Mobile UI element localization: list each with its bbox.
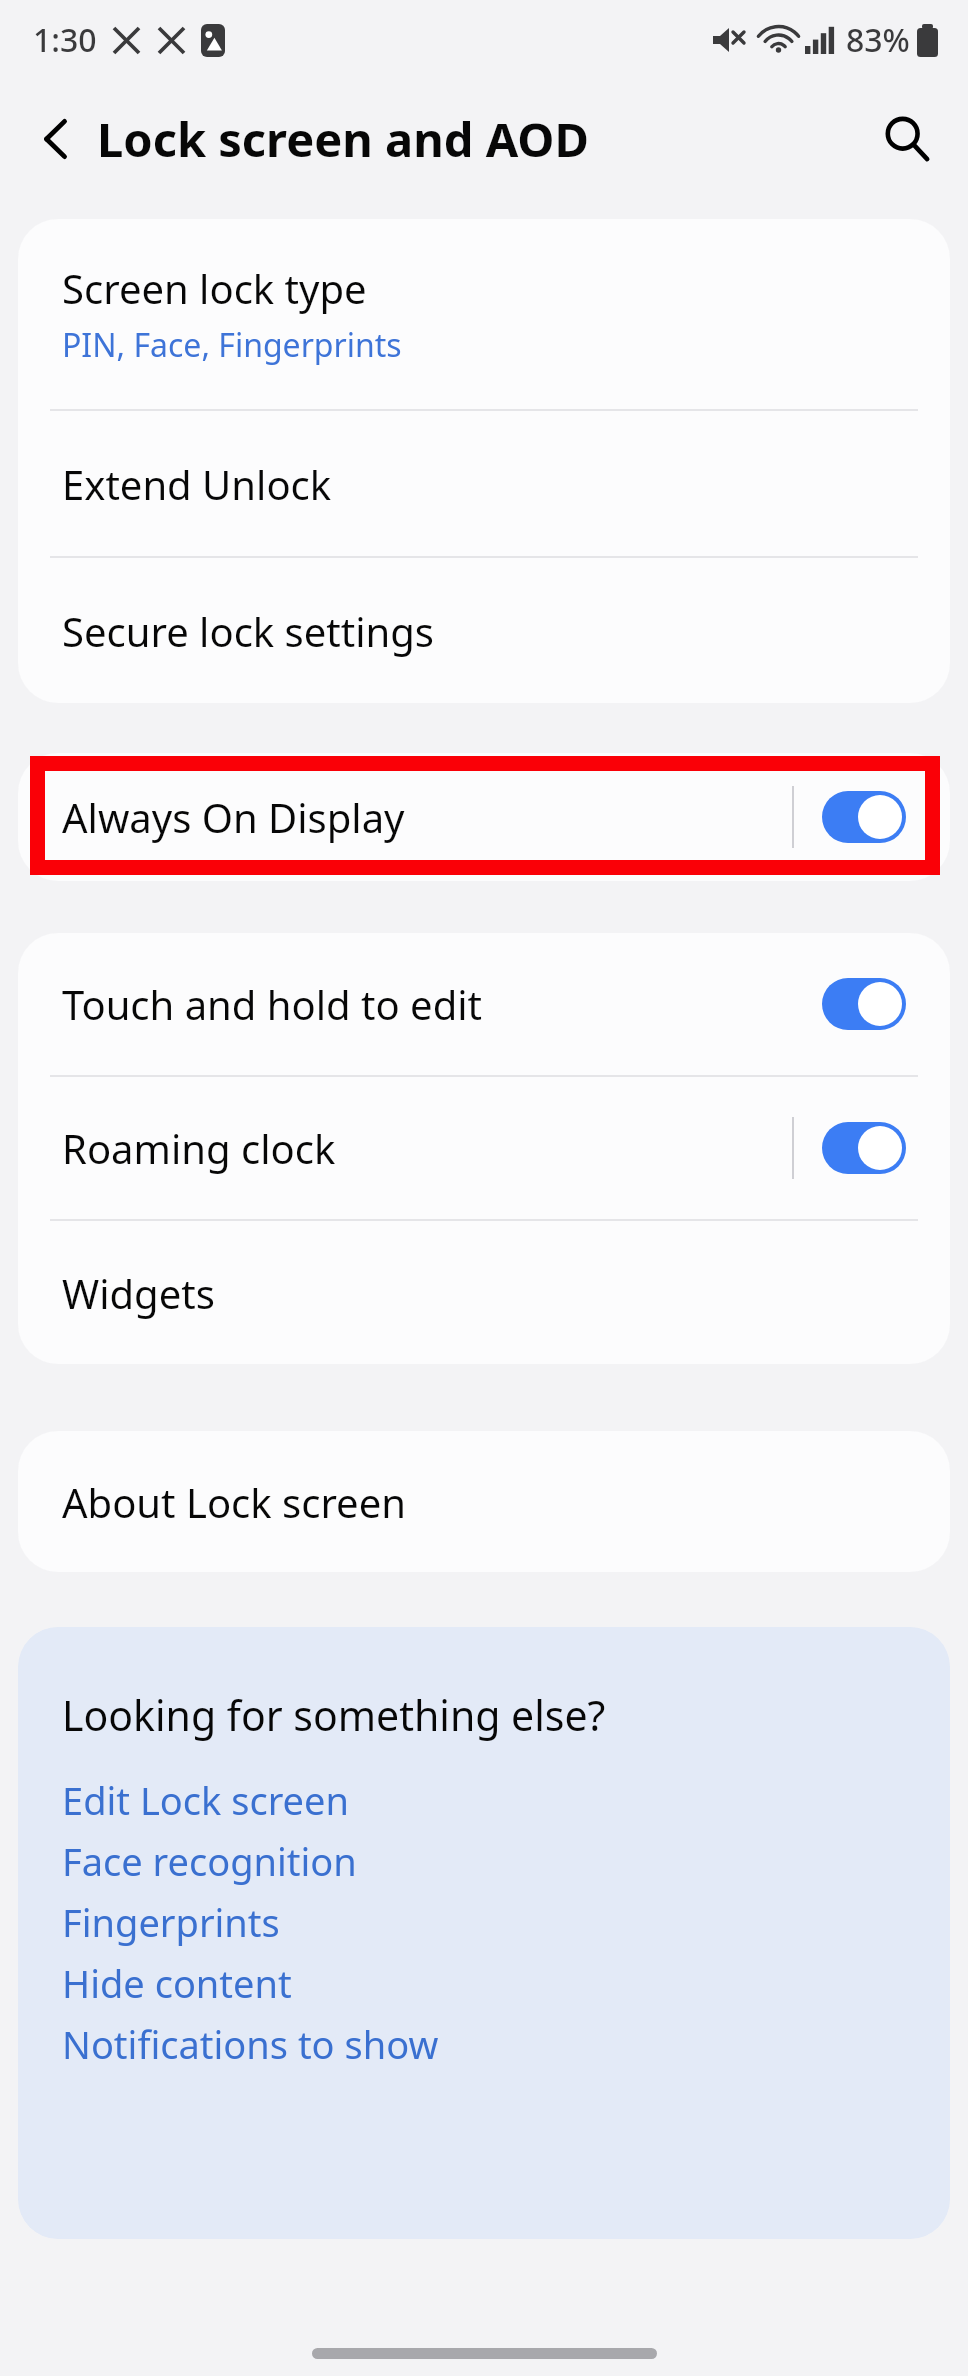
staticText: 1:30 <box>33 18 97 62</box>
staticText: Always On Display <box>62 790 792 844</box>
staticText: Roaming clock <box>62 1121 792 1175</box>
staticText: Widgets <box>62 1266 215 1320</box>
staticText: Lock screen and AOD <box>97 107 589 171</box>
staticText: Edit Lock screen <box>62 1774 349 1826</box>
staticText: Looking for something else? <box>62 1687 606 1743</box>
button[interactable]: Roaming clock toggle, on <box>822 1122 906 1174</box>
button[interactable]: Always On Display <box>18 753 950 881</box>
button[interactable]: Hide content <box>62 1952 950 2013</box>
button[interactable]: Extend Unlock <box>18 411 950 556</box>
staticText: Extend Unlock <box>62 457 332 511</box>
staticText: Screen lock type <box>62 261 367 315</box>
button[interactable]: About Lock screen <box>18 1431 950 1572</box>
button[interactable]: Face recognition <box>62 1830 950 1891</box>
button[interactable]: Roaming clock <box>18 1077 950 1219</box>
button[interactable]: Screen lock type <box>18 219 950 409</box>
button[interactable]: Back <box>18 100 96 178</box>
staticText: Notifications to show <box>62 2018 439 2070</box>
button[interactable]: Fingerprints <box>62 1891 950 1952</box>
staticText: Face recognition <box>62 1835 357 1887</box>
staticText: PIN, Face, Fingerprints <box>62 323 402 367</box>
button[interactable]: Widgets <box>18 1221 950 1364</box>
button[interactable]: Always On Display toggle, on <box>822 791 906 843</box>
button[interactable]: Search <box>866 98 948 180</box>
staticText: Hide content <box>62 1957 292 2009</box>
staticText: Fingerprints <box>62 1896 280 1948</box>
staticText: About Lock screen <box>62 1475 406 1529</box>
button[interactable]: Notifications to show <box>62 2013 950 2074</box>
staticText: 83% <box>846 18 910 62</box>
staticText: Touch and hold to edit <box>62 977 822 1031</box>
button[interactable]: Touch and hold to edit toggle, on <box>822 978 906 1030</box>
button[interactable]: Secure lock settings <box>18 558 950 703</box>
button[interactable]: Edit Lock screen <box>62 1769 950 1830</box>
button[interactable]: Touch and hold to edit <box>18 933 950 1075</box>
staticText: Secure lock settings <box>62 604 434 658</box>
